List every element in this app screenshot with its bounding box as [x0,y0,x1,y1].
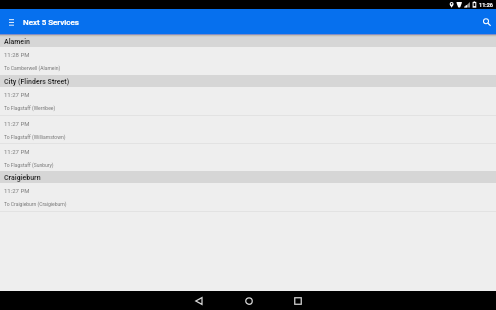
staticText: To Camberwell (Alamein) [4,65,61,71]
staticText: 11:27 PM [4,148,30,155]
staticText: 11:27 PM [4,120,30,127]
staticText: Craigieburn [4,174,41,182]
button[interactable]: 11:27 PM [0,87,496,115]
button[interactable]: 11:27 PM [0,143,496,171]
staticText: City (Flinders Street) [4,78,70,86]
button[interactable]: Back [182,291,216,310]
button[interactable]: Open navigation drawer [0,9,22,34]
staticText: 11:28 PM [4,51,30,58]
staticText: Alamein [4,38,30,46]
button[interactable]: Craigieburn [0,171,496,183]
staticText: 11:27 PM [4,91,30,98]
button[interactable]: Search [476,9,496,34]
button[interactable]: Alamein [0,37,496,47]
button[interactable]: City (Flinders Street) [0,75,496,87]
staticText: To Craigieburn (Craigieburn) [4,201,67,207]
staticText: To Flagstaff (Williamstown) [4,134,66,140]
button[interactable]: 11:28 PM [0,47,496,75]
button[interactable]: 11:27 PM [0,115,496,143]
staticText: To Flagstaff (Sunbury) [4,162,54,168]
button[interactable]: Recent apps [281,291,315,310]
button[interactable]: 11:27 PM [0,183,496,211]
staticText: Next 5 Services [23,18,79,27]
staticText: 11:27 PM [4,187,30,194]
button[interactable]: Home [232,291,266,310]
staticText: 11:26 [479,2,493,8]
staticText: To Flagstaff (Werribee) [4,105,56,111]
